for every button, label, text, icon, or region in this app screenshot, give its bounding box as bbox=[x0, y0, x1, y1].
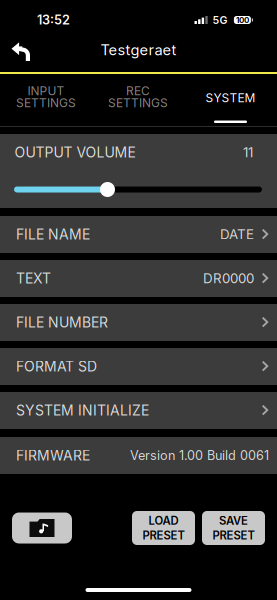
staticText: INPUT bbox=[27, 85, 64, 97]
staticText: Version 1.00 Build 0061 bbox=[130, 448, 269, 463]
staticText: DR0000 bbox=[203, 270, 254, 286]
staticText: 13:52 bbox=[37, 12, 70, 28]
button[interactable]: REC bbox=[92, 74, 184, 126]
button[interactable]: TEXT bbox=[0, 260, 277, 297]
button[interactable]: FORMAT SD bbox=[0, 348, 277, 385]
staticText: FIRMWARE bbox=[16, 447, 90, 464]
button[interactable]: SYSTEM bbox=[184, 74, 277, 126]
button[interactable]: SAVE bbox=[202, 511, 265, 545]
staticText: SAVE bbox=[219, 514, 248, 527]
staticText: OUTPUT VOLUME bbox=[14, 144, 135, 161]
staticText: SETTINGS bbox=[108, 97, 168, 109]
staticText: FORMAT SD bbox=[16, 358, 97, 375]
staticText: Testgeraet bbox=[100, 41, 176, 59]
button[interactable]: Browse files bbox=[12, 512, 72, 543]
staticText: LOAD bbox=[148, 514, 178, 527]
button[interactable]: FILE NUMBER bbox=[0, 304, 277, 341]
staticText: 5G bbox=[212, 13, 227, 26]
staticText: 11 bbox=[243, 144, 253, 160]
staticText: 100 bbox=[236, 15, 249, 25]
staticText: SYSTEM bbox=[205, 92, 255, 104]
staticText: TEXT bbox=[16, 270, 51, 287]
button[interactable]: SYSTEM INITIALIZE bbox=[0, 392, 277, 429]
staticText: SETTINGS bbox=[16, 97, 76, 109]
button[interactable]: Back bbox=[4, 33, 38, 67]
staticText: REC bbox=[126, 85, 150, 97]
button[interactable]: FIRMWARE bbox=[0, 437, 277, 474]
staticText: FILE NUMBER bbox=[16, 314, 108, 331]
button[interactable]: FILE NAME bbox=[0, 216, 277, 253]
button[interactable]: LOAD bbox=[132, 511, 195, 545]
staticText: PRESET bbox=[142, 528, 184, 542]
staticText: FILE NAME bbox=[16, 226, 90, 243]
staticText: PRESET bbox=[212, 528, 254, 542]
button[interactable]: INPUT bbox=[0, 74, 92, 126]
staticText: DATE bbox=[220, 226, 254, 242]
staticText: SYSTEM INITIALIZE bbox=[16, 402, 149, 419]
